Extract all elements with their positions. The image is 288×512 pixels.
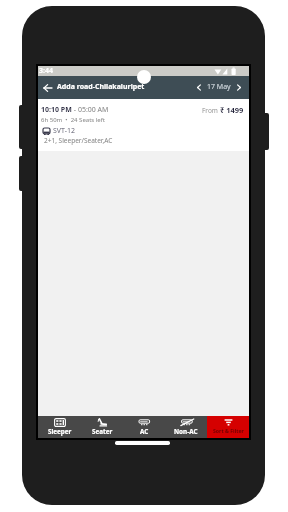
staticText: AC [140, 427, 149, 436]
button[interactable]: 17 May [202, 82, 235, 92]
button[interactable]: Seater [81, 416, 123, 438]
button[interactable]: Sort & Filter [207, 416, 249, 438]
staticText: 17 May [207, 82, 231, 92]
staticText: - 05:00 AM [72, 105, 109, 115]
button[interactable]: Non-AC [165, 416, 207, 438]
button[interactable]: AC [123, 416, 165, 438]
staticText: 2+1, Sleeper/Seater,AC [44, 136, 113, 145]
button[interactable] [41, 81, 55, 95]
staticText: SVT-12 [53, 126, 75, 136]
staticText: Sort & Filter [213, 427, 244, 434]
staticText: 3:44 [39, 66, 53, 76]
staticText: Seater [92, 427, 113, 436]
staticText: Sleeper [48, 427, 72, 436]
staticText: ₹ 1499 [220, 105, 244, 115]
button[interactable] [235, 84, 242, 91]
button[interactable]: 10:10 PM [38, 99, 249, 151]
staticText: From [202, 106, 220, 115]
staticText: 6h 50m • 24 Seats left [41, 116, 105, 124]
staticText: 10:10 PM [41, 105, 72, 115]
staticText: Non-AC [174, 427, 198, 436]
button[interactable]: Sleeper [38, 416, 81, 438]
button[interactable] [195, 84, 202, 91]
staticText: Adda road-Chilakaluripet [57, 82, 145, 92]
